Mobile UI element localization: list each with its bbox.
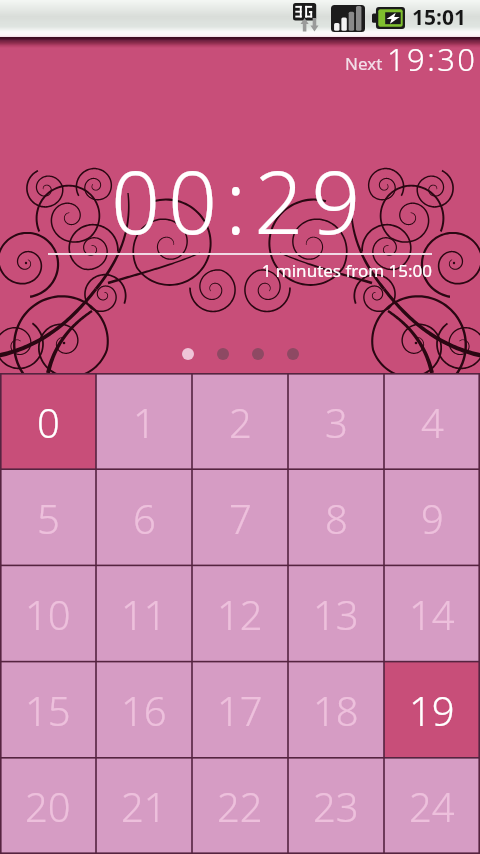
- button[interactable]: Page 2: [217, 348, 229, 360]
- staticText: 9: [421, 491, 444, 545]
- button[interactable]: 20: [0, 758, 96, 854]
- button[interactable]: 5: [0, 470, 96, 566]
- button[interactable]: Page 1: [182, 348, 194, 360]
- staticText: 1 minutes from 15:00: [48, 259, 432, 282]
- button[interactable]: 22: [192, 758, 288, 854]
- staticText: 12: [217, 587, 263, 641]
- staticText: 15: [25, 683, 71, 737]
- staticText: 11: [121, 587, 167, 641]
- staticText: 23: [313, 779, 359, 833]
- button[interactable]: 15: [0, 662, 96, 758]
- staticText: Next: [345, 52, 383, 75]
- staticText: 7: [229, 491, 252, 545]
- staticText: 13: [313, 587, 359, 641]
- staticText: 5: [37, 491, 60, 545]
- staticText: 22: [217, 779, 263, 833]
- button[interactable]: 6: [96, 470, 192, 566]
- button[interactable]: 4: [384, 373, 480, 470]
- button[interactable]: 8: [288, 470, 384, 566]
- button[interactable]: 14: [384, 566, 480, 662]
- staticText: 19: [409, 683, 455, 737]
- button[interactable]: 23: [288, 758, 384, 854]
- staticText: 2: [229, 395, 252, 449]
- button[interactable]: 2: [192, 373, 288, 470]
- button[interactable]: 7: [192, 470, 288, 566]
- button[interactable]: 16: [96, 662, 192, 758]
- button[interactable]: 17: [192, 662, 288, 758]
- staticText: 19:30: [387, 38, 478, 80]
- button[interactable]: 24: [384, 758, 480, 854]
- staticText: 17: [217, 683, 263, 737]
- button[interactable]: 13: [288, 566, 384, 662]
- staticText: 3: [325, 395, 348, 449]
- staticText: 8: [325, 491, 348, 545]
- button[interactable]: 0: [0, 373, 96, 470]
- staticText: 0: [37, 395, 60, 449]
- staticText: 18: [313, 683, 359, 737]
- staticText: 14: [409, 587, 455, 641]
- staticText: 16: [121, 683, 167, 737]
- button[interactable]: 21: [96, 758, 192, 854]
- staticText: 15:01: [412, 3, 466, 32]
- button[interactable]: 3: [288, 373, 384, 470]
- button[interactable]: 12: [192, 566, 288, 662]
- staticText: 4: [421, 395, 444, 449]
- button[interactable]: Page 4: [287, 348, 299, 360]
- button[interactable]: 9: [384, 470, 480, 566]
- staticText: 21: [121, 779, 167, 833]
- button[interactable]: 10: [0, 566, 96, 662]
- staticText: 1: [133, 395, 156, 449]
- staticText: 00:29: [111, 142, 369, 259]
- staticText: 20: [25, 779, 71, 833]
- button[interactable]: 11: [96, 566, 192, 662]
- button[interactable]: Page 3: [252, 348, 264, 360]
- button[interactable]: 1: [96, 373, 192, 470]
- button[interactable]: 19: [384, 662, 480, 758]
- staticText: 6: [133, 491, 156, 545]
- staticText: 24: [409, 779, 455, 833]
- button[interactable]: 18: [288, 662, 384, 758]
- staticText: 10: [25, 587, 71, 641]
